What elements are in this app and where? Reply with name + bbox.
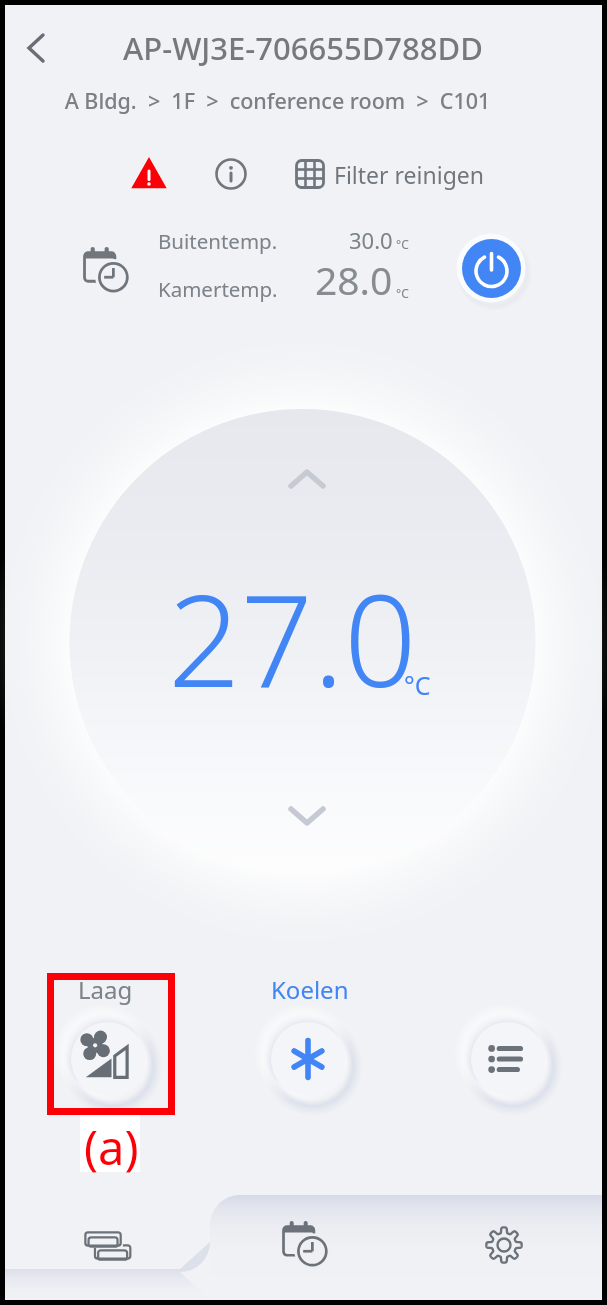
button[interactable]: Air conditioner	[5, 1200, 210, 1300]
staticText: 28.0	[315, 253, 393, 306]
staticText: °C	[404, 668, 431, 702]
staticText: AP-WJ3E-706655D788DD	[123, 27, 483, 69]
button[interactable]: Decrease temperature	[275, 784, 339, 848]
button[interactable]: Filter reinigen	[286, 148, 484, 200]
button[interactable]: Schedule	[210, 1200, 406, 1300]
staticText: Buitentemp.	[158, 227, 278, 255]
button[interactable]: Laag	[69, 1020, 147, 1098]
button[interactable]: Information	[205, 148, 257, 200]
staticText: 30.0	[349, 225, 393, 255]
button[interactable]: Options	[469, 1020, 547, 1098]
staticText: °C	[396, 285, 409, 301]
staticText: °C	[396, 236, 409, 252]
staticText: Koelen	[271, 973, 349, 1006]
button[interactable]: Koelen	[269, 1020, 347, 1098]
staticText: 27.0	[168, 551, 417, 724]
button[interactable]: Warning	[123, 148, 175, 200]
button[interactable]: Back	[12, 24, 60, 72]
staticText: Laag	[78, 973, 133, 1006]
button[interactable]: Settings	[406, 1200, 602, 1300]
staticText: (a)	[84, 1115, 139, 1179]
staticText: Kamertemp.	[158, 275, 278, 303]
staticText: Filter reinigen	[334, 159, 484, 190]
staticText: A Bldg. > 1F > conference room > C101	[0, 86, 576, 115]
button[interactable]: Increase temperature	[275, 447, 339, 511]
button[interactable]: Power	[462, 239, 521, 298]
